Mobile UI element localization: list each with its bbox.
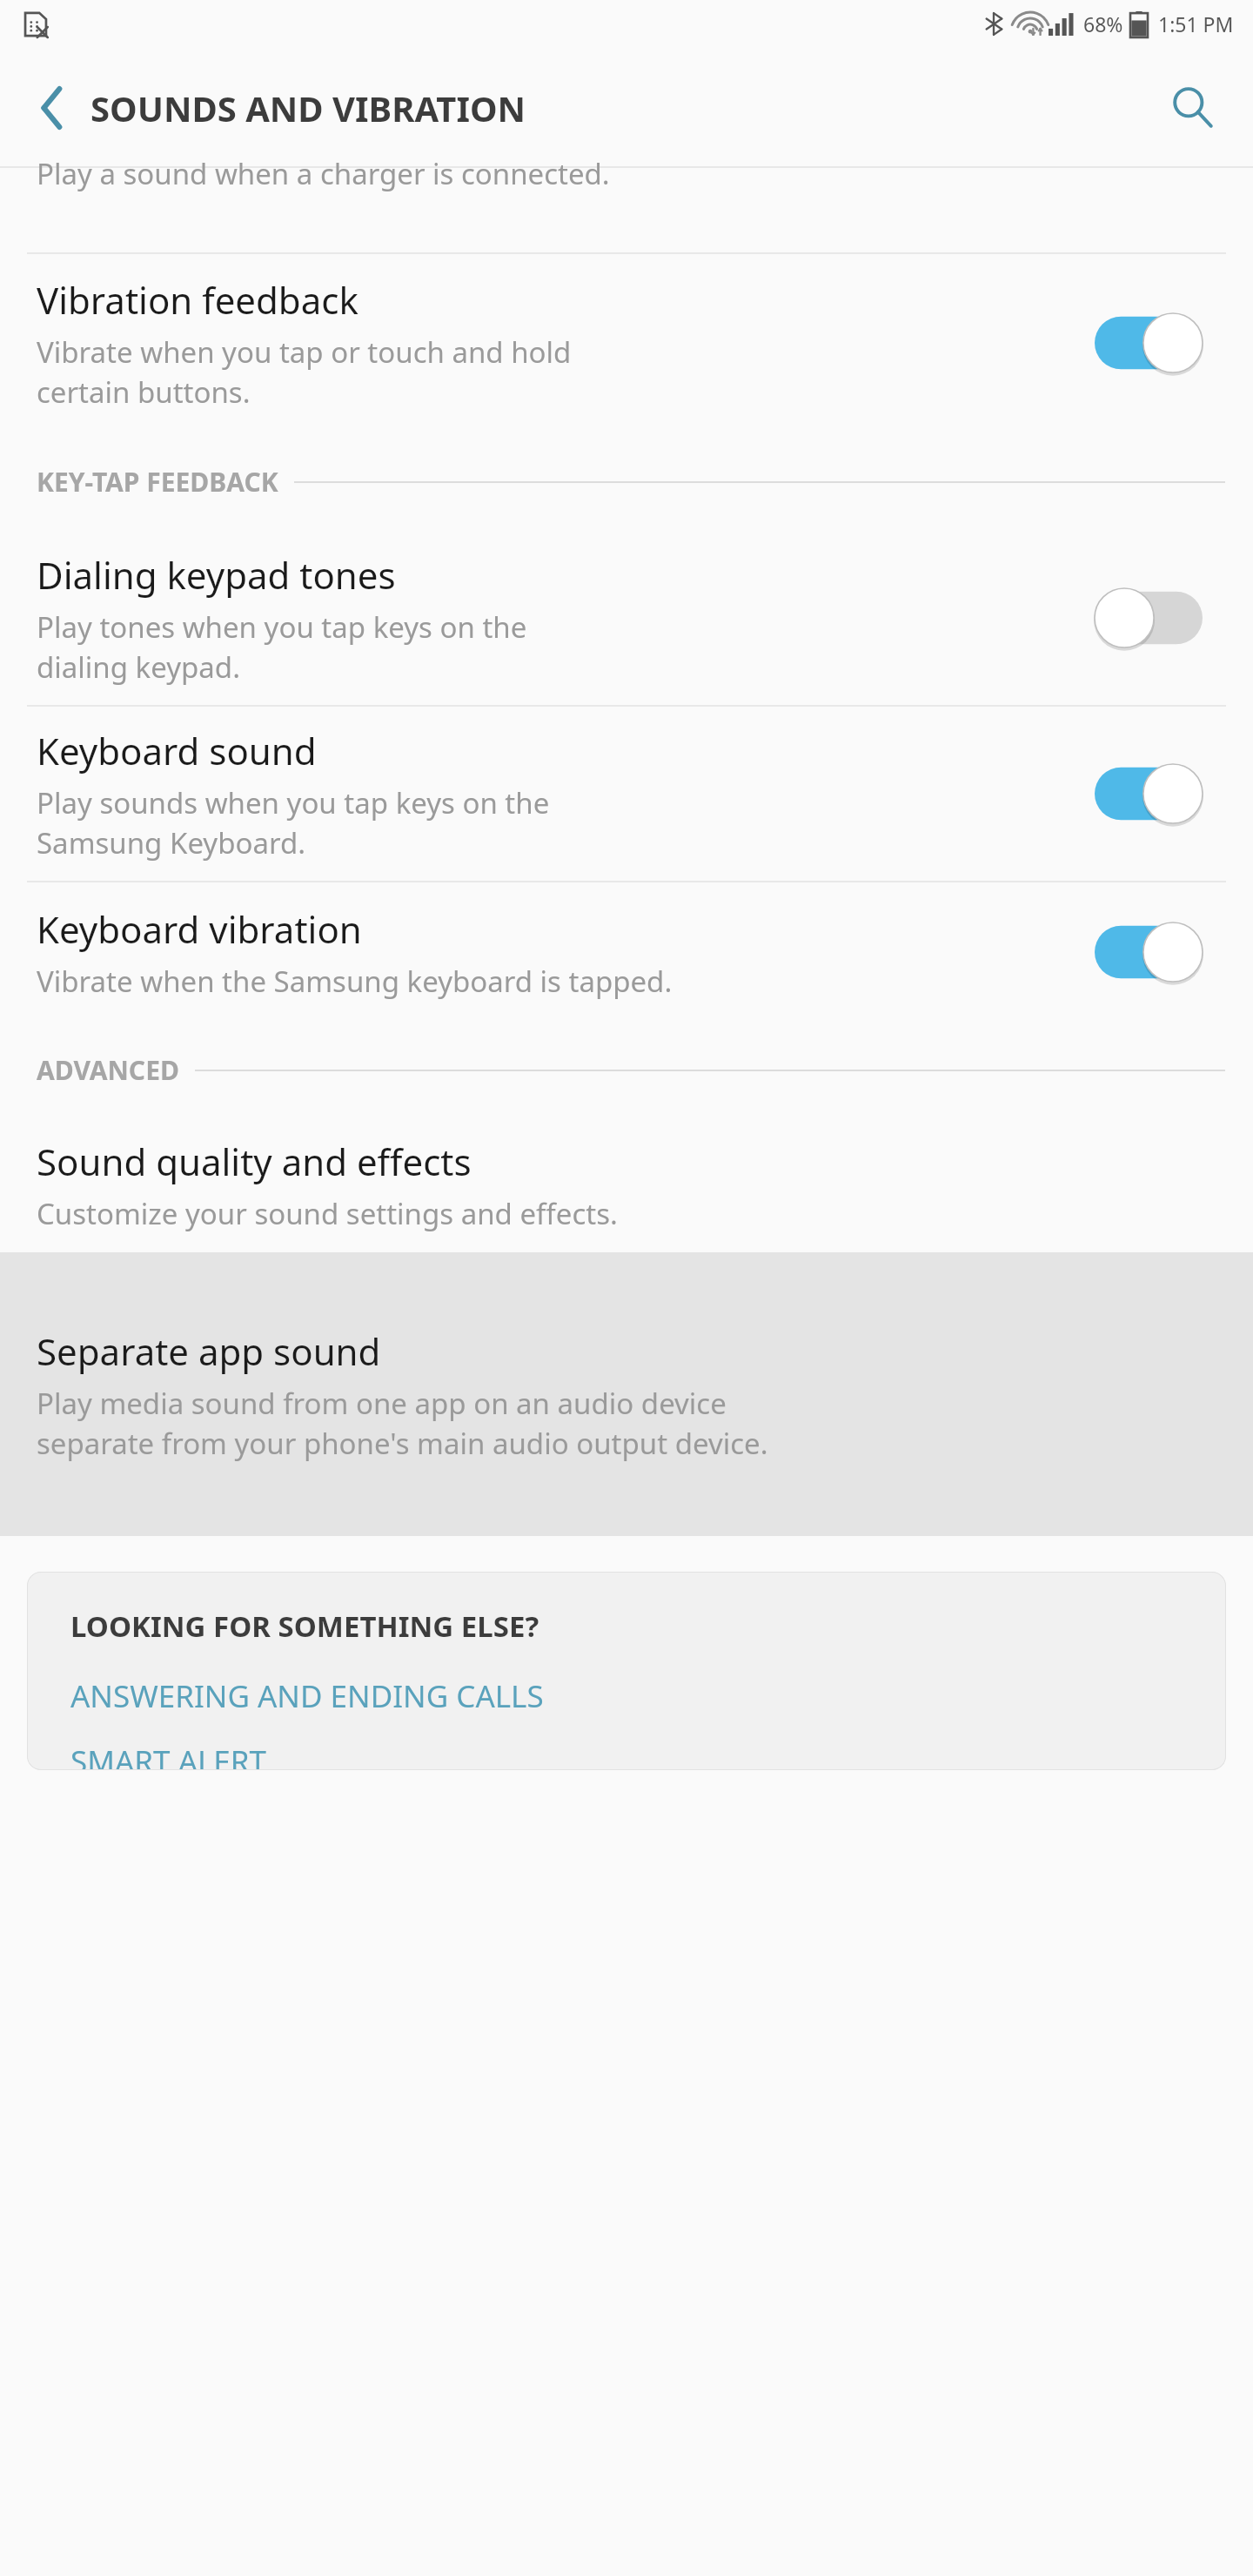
button[interactable]: Sound quality and effects — [0, 1117, 1253, 1252]
button[interactable]: Dialing keypad tones — [0, 531, 1253, 705]
staticText: KEY-TAP FEEDBACK — [37, 464, 278, 500]
staticText: LOOKING FOR SOMETHING ELSE? — [70, 1607, 539, 1646]
staticText: Vibration feedback — [37, 275, 358, 325]
staticText: Separate app sound — [37, 1326, 381, 1376]
staticText: 68% — [1083, 10, 1123, 37]
button[interactable]: SMART ALERT — [70, 1741, 267, 1770]
staticText: Dialing keypad tones — [37, 550, 396, 600]
staticText: ADVANCED — [37, 1052, 179, 1088]
button[interactable]: Search — [1145, 60, 1241, 156]
staticText: Sound quality and effects — [37, 1137, 472, 1186]
staticText: Keyboard sound — [37, 726, 317, 775]
staticText: SMART ALERT — [70, 1741, 267, 1770]
button[interactable]: Vibration feedback — [0, 254, 1253, 432]
staticText: ANSWERING AND ENDING CALLS — [70, 1675, 544, 1717]
staticText: SOUNDS AND VIBRATION — [90, 84, 526, 131]
staticText: Customize your sound settings and effect… — [37, 1194, 618, 1233]
staticText: Vibrate when you tap or touch and hold c… — [37, 332, 572, 412]
staticText: Vibrate when the Samsung keyboard is tap… — [37, 962, 673, 1001]
button[interactable]: Keyboard sound — [0, 707, 1253, 881]
staticText: Play sounds when you tap keys on the Sam… — [37, 783, 550, 862]
staticText: Play a sound when a charger is connected… — [37, 154, 610, 193]
button[interactable]: Keyboard vibration — [0, 882, 1253, 1022]
staticText: Keyboard vibration — [37, 904, 362, 954]
button[interactable]: ANSWERING AND ENDING CALLS — [70, 1675, 544, 1717]
button[interactable]: Back — [10, 66, 94, 150]
button[interactable]: Separate app sound — [0, 1252, 1253, 1536]
staticText: Play tones when you tap keys on the dial… — [37, 607, 527, 687]
staticText: 1:51 PM — [1158, 10, 1234, 37]
staticText: Play media sound from one app on an audi… — [37, 1384, 768, 1463]
